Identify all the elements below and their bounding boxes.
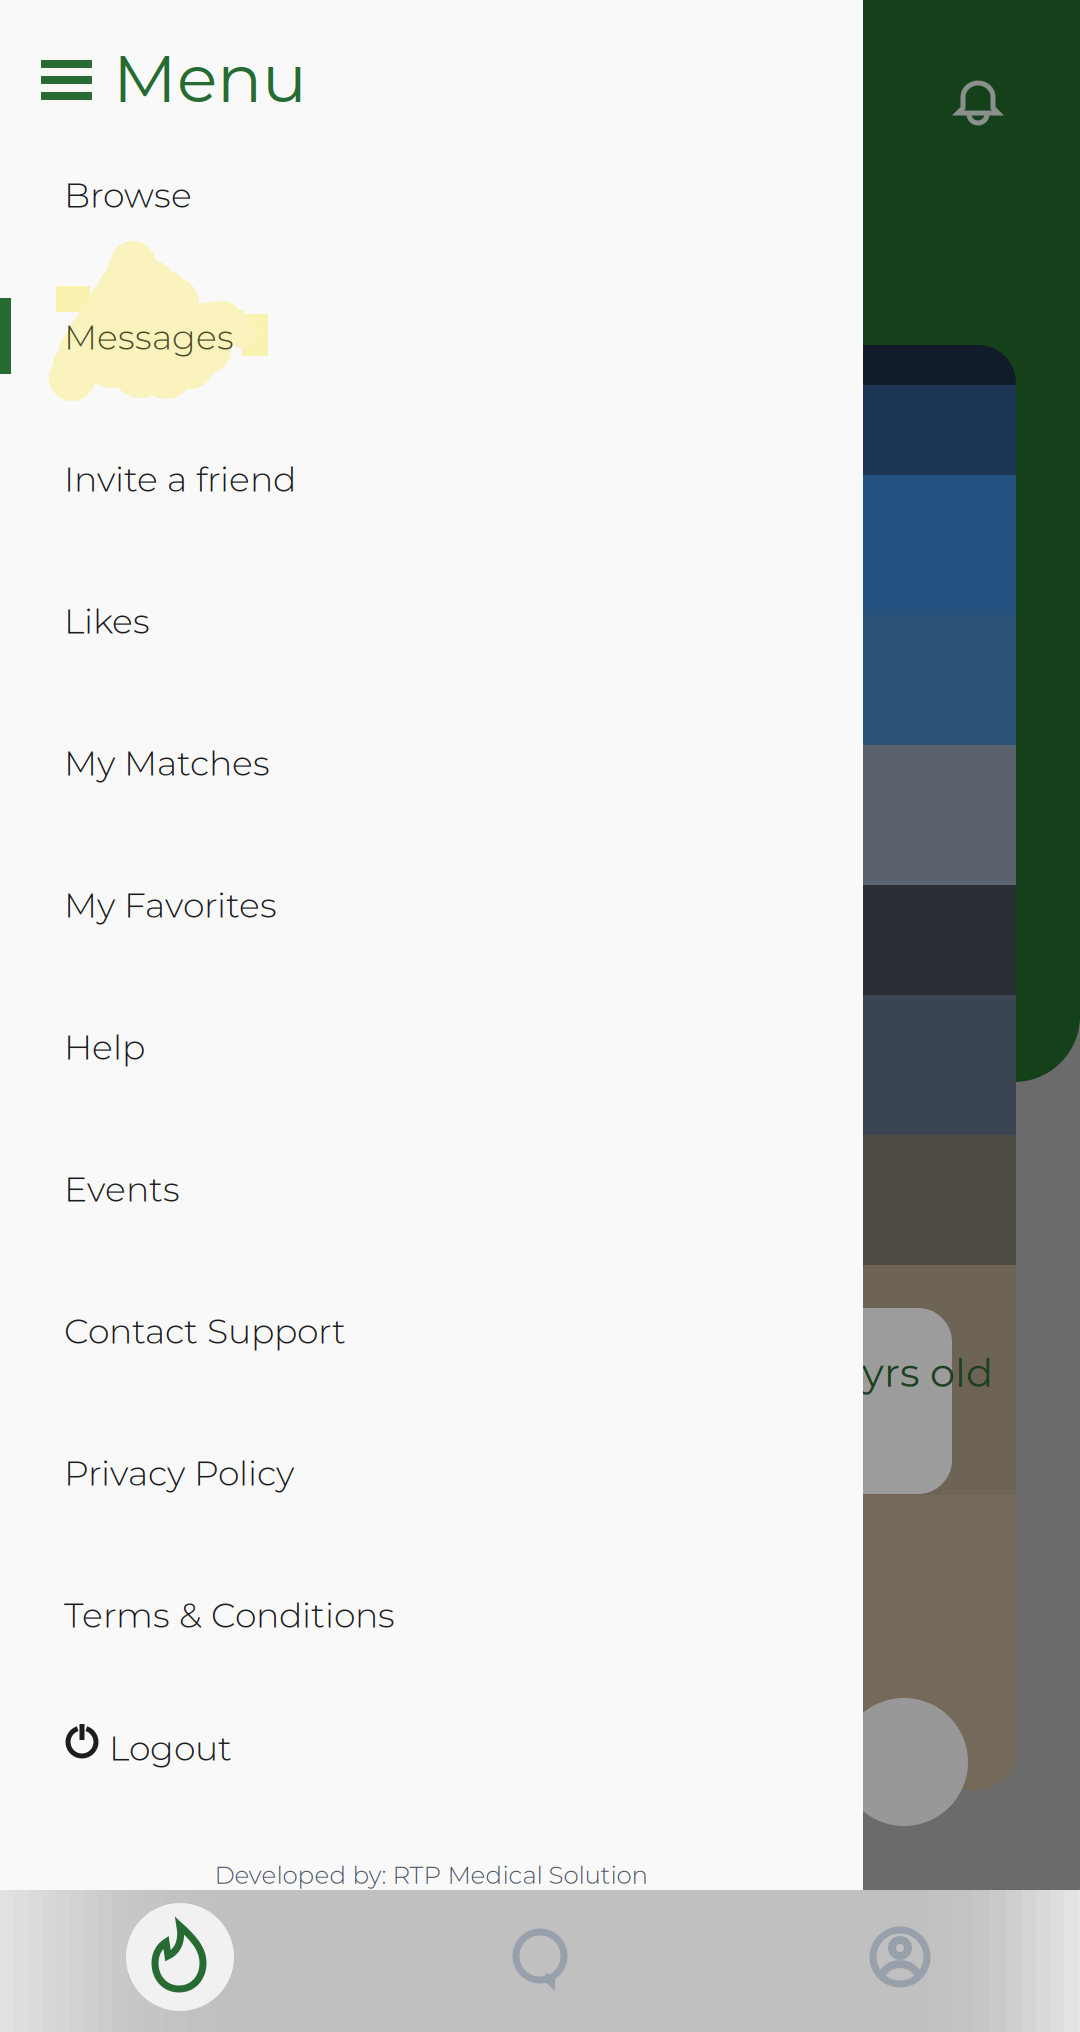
staticText: Messages xyxy=(64,316,234,358)
staticText: Developed by: RTP Medical Solution xyxy=(214,1860,648,1890)
staticText: Browse xyxy=(64,174,192,216)
button[interactable]: Likes xyxy=(0,550,863,692)
button[interactable]: Events xyxy=(0,1118,863,1260)
staticText: Likes xyxy=(64,600,150,642)
staticText: Invite a friend xyxy=(64,458,296,500)
button[interactable]: Profile xyxy=(720,1890,1080,2032)
staticText: Menu xyxy=(113,37,307,119)
button[interactable]: Discover xyxy=(0,1890,360,2032)
button[interactable]: Browse xyxy=(0,124,863,266)
staticText: My Matches xyxy=(64,742,270,784)
button[interactable]: Help xyxy=(0,976,863,1118)
staticText: Logout xyxy=(109,1727,232,1769)
button[interactable]: Logout xyxy=(0,1686,863,1810)
button[interactable]: Terms & Conditions xyxy=(0,1544,863,1686)
staticText: Terms & Conditions xyxy=(64,1594,395,1636)
staticText: Help xyxy=(64,1026,145,1068)
button[interactable]: Chats xyxy=(360,1890,720,2032)
button[interactable]: Invite a friend xyxy=(0,408,863,550)
button[interactable]: Notifications xyxy=(954,78,1002,126)
staticText: yrs old xyxy=(862,1348,993,1397)
staticText: Privacy Policy xyxy=(64,1452,294,1494)
button[interactable]: Privacy Policy xyxy=(0,1402,863,1544)
staticText: My Favorites xyxy=(64,884,277,926)
staticText: Contact Support xyxy=(64,1310,346,1352)
button[interactable]: My Favorites xyxy=(0,834,863,976)
button[interactable]: Contact Support xyxy=(0,1260,863,1402)
button[interactable]: My Matches xyxy=(0,692,863,834)
button[interactable]: Close menu xyxy=(0,0,863,124)
button[interactable]: Messages xyxy=(0,266,863,408)
staticText: Events xyxy=(64,1168,180,1210)
